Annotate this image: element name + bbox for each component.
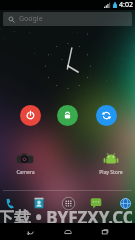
button[interactable]: Messaging — [89, 196, 103, 210]
button[interactable]: Back — [22, 224, 38, 240]
staticText: Play Store — [99, 169, 123, 176]
button[interactable]: Home — [60, 224, 76, 240]
button[interactable]: Restart — [96, 105, 117, 126]
button[interactable]: Google — [3, 12, 132, 26]
button[interactable]: People — [32, 196, 46, 210]
button[interactable]: Apps — [61, 196, 75, 210]
staticText: 4:02 — [119, 0, 133, 10]
button[interactable]: Power — [20, 105, 41, 126]
staticText: Camera — [16, 169, 35, 176]
button[interactable]: Phone — [3, 196, 17, 210]
button[interactable]: Lock — [57, 105, 78, 126]
button[interactable]: Camera — [10, 150, 40, 176]
button[interactable]: Browser — [118, 196, 132, 210]
button[interactable]: Play Store — [96, 150, 126, 176]
staticText: Google — [19, 14, 43, 24]
staticText: 下载 • BYFZXY.COM — [0, 206, 132, 229]
button[interactable]: Recents — [97, 224, 113, 240]
